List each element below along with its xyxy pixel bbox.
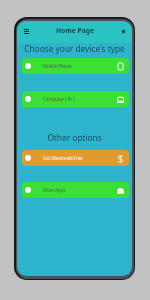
button[interactable]: Mobile Phone <box>22 58 129 74</box>
staticText: Computer ( Pc ) <box>43 96 75 102</box>
staticText: Mobile Phone <box>43 63 72 69</box>
button[interactable]: More Apps <box>22 182 129 198</box>
button[interactable]: Favorite <box>117 25 129 37</box>
staticText: Other options <box>17 132 132 143</box>
staticText: Choose your device's type <box>17 43 132 54</box>
button[interactable]: Computer ( Pc ) <box>22 91 129 107</box>
staticText: Get Diamonds Free <box>43 155 83 161</box>
staticText: Home Page <box>56 26 94 35</box>
button[interactable]: Get Diamonds Free <box>22 150 129 166</box>
button[interactable]: Menu <box>20 25 32 37</box>
staticText: More Apps <box>43 187 66 193</box>
